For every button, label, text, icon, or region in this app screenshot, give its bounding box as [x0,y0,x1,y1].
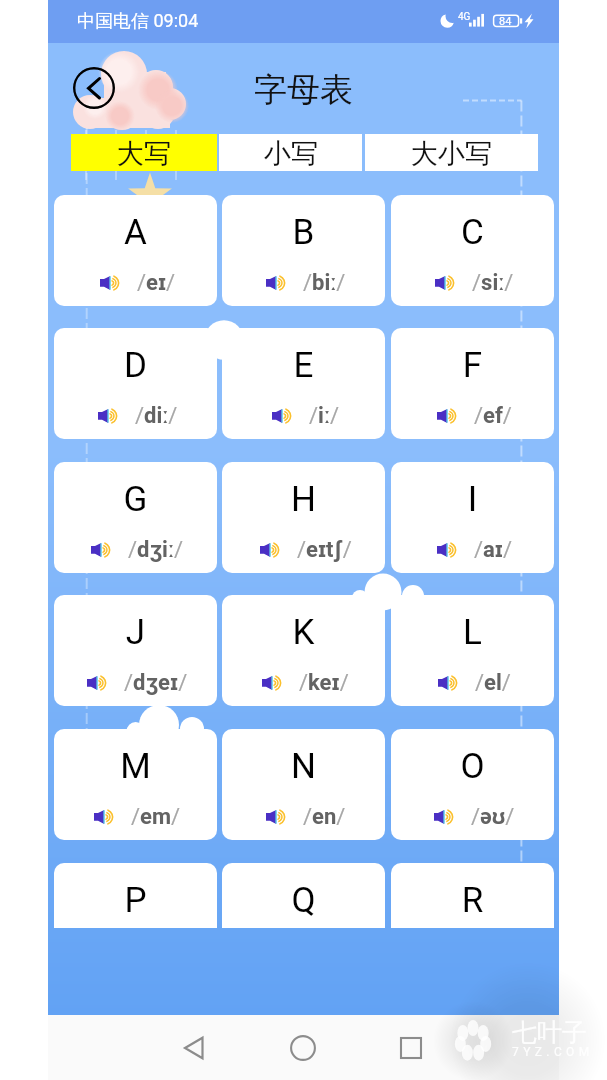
button[interactable]: O [391,729,554,840]
staticText: N [222,746,385,787]
staticText: /em/ [131,804,181,830]
staticText: A [54,212,217,253]
staticText: L [391,612,554,653]
button[interactable]: C [391,195,554,306]
button[interactable]: H [222,462,385,573]
staticText: /el/ [475,670,511,696]
button[interactable]: Recent apps [385,1022,437,1074]
staticText: 中国电信 09:04 [77,10,199,33]
staticText: /dʒeɪ/ [124,670,188,696]
staticText: O [391,746,554,787]
staticText: F [391,345,554,386]
button[interactable]: F [391,328,554,439]
button[interactable]: Back [73,67,115,109]
staticText: E [222,345,385,386]
button[interactable]: B [222,195,385,306]
staticText: /aɪ/ [474,537,513,563]
button[interactable]: L [391,595,554,706]
staticText: Q [222,880,385,921]
staticText: 字母表 [254,69,353,111]
button[interactable]: N [222,729,385,840]
button[interactable]: P [54,863,217,928]
staticText: /biː/ [303,270,346,296]
staticText: /siː/ [472,270,514,296]
staticText: 七叶子 [512,1017,587,1048]
button[interactable]: R [391,863,554,928]
staticText: M [54,746,217,787]
staticText: G [54,479,217,520]
button[interactable]: Back [168,1022,220,1074]
staticText: /dʒiː/ [128,537,184,563]
staticText: J [54,612,217,653]
staticText: 大小写 [411,137,492,171]
button[interactable]: Home [277,1022,329,1074]
staticText: H [222,479,385,520]
staticText: 84 [499,15,512,28]
button[interactable]: E [222,328,385,439]
button[interactable]: 大写 [71,134,217,171]
staticText: /diː/ [135,403,178,429]
staticText: R [391,880,554,921]
button[interactable]: A [54,195,217,306]
button[interactable]: M [54,729,217,840]
button[interactable]: K [222,595,385,706]
staticText: /ef/ [474,403,512,429]
staticText: 7YZ.COM [512,1045,594,1059]
staticText: /əʊ/ [471,804,515,830]
button[interactable]: D [54,328,217,439]
staticText: I [391,479,554,520]
staticText: /keɪ/ [299,670,349,696]
button[interactable]: G [54,462,217,573]
button[interactable]: Q [222,863,385,928]
button[interactable]: J [54,595,217,706]
staticText: K [222,612,385,653]
button[interactable]: I [391,462,554,573]
staticText: B [222,212,385,253]
staticText: D [54,345,217,386]
staticText: 大写 [117,137,171,171]
staticText: /iː/ [309,403,340,429]
button[interactable]: 大小写 [365,134,538,171]
staticText: /eɪ/ [137,270,176,296]
button[interactable]: 小写 [219,134,362,171]
staticText: /en/ [303,804,346,830]
staticText: /eɪtʃ/ [297,537,352,563]
staticText: P [54,880,217,921]
staticText: 小写 [264,137,318,171]
staticText: 4G [458,11,471,23]
staticText: C [391,212,554,253]
